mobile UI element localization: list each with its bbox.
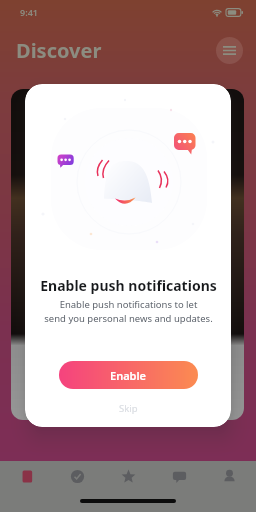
button[interactable]: Messages	[155, 461, 203, 512]
button[interactable]: Saved	[53, 461, 101, 512]
button[interactable]: Favourites	[104, 461, 152, 512]
button[interactable]: Skip	[99, 400, 158, 417]
staticText: Enable push notifications to let send yo…	[44, 298, 213, 324]
button[interactable]: Profile	[205, 461, 253, 512]
button[interactable]: Filter	[216, 37, 243, 64]
staticText: Enable push notifications	[40, 276, 217, 295]
button[interactable]: Discover	[3, 461, 51, 512]
staticText: Enable	[110, 368, 147, 383]
staticText: Discover	[16, 37, 102, 64]
button[interactable]: Enable	[59, 361, 198, 389]
staticText: 9:41	[20, 6, 38, 18]
staticText: Skip	[119, 402, 138, 415]
